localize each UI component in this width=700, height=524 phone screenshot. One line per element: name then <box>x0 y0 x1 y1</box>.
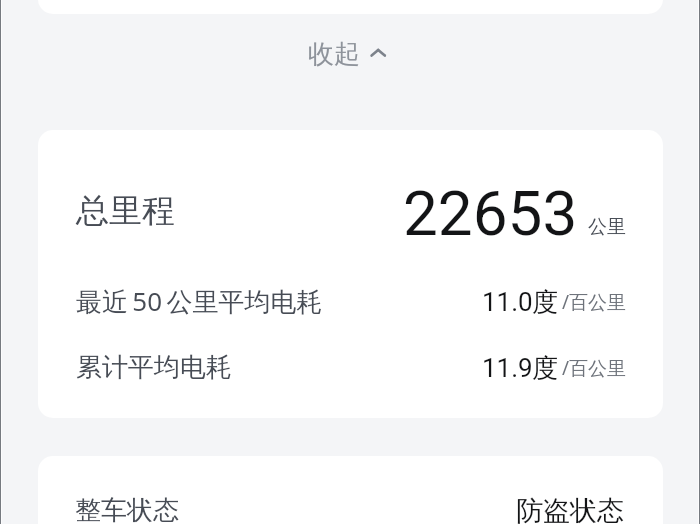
staticText: /百公里 <box>562 289 627 315</box>
staticText: /百公里 <box>562 355 627 381</box>
staticText: 总里程 <box>76 190 175 232</box>
staticText: 防盗状态 <box>516 494 624 524</box>
staticText: 公里 <box>588 215 626 239</box>
button[interactable]: 总里程 <box>38 156 663 248</box>
button[interactable]: 最近 50 公里平均电耗 <box>38 254 663 316</box>
staticText: 11.9 <box>482 353 533 383</box>
staticText: 累计平均电耗 <box>76 351 232 384</box>
button[interactable]: 累计平均电耗 <box>38 320 663 382</box>
button[interactable]: 收起 <box>296 27 404 73</box>
staticText: 11.0 <box>482 287 533 317</box>
other: Collapse <box>370 48 388 60</box>
staticText: 整车状态 <box>75 494 179 524</box>
staticText: 最近 50 公里平均电耗 <box>76 283 323 319</box>
button[interactable]: 整车状态 <box>38 476 663 524</box>
staticText: 度 <box>532 352 558 385</box>
staticText: 22653 <box>403 177 578 250</box>
staticText: 度 <box>532 286 558 319</box>
staticText: 收起 <box>308 38 360 71</box>
